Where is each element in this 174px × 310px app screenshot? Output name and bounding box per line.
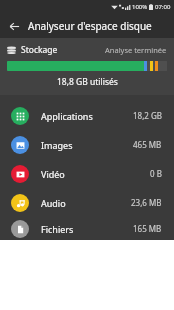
- staticText: 0 B: [150, 168, 162, 179]
- staticText: Fichiers: [41, 223, 74, 235]
- staticText: Stockage: [21, 44, 58, 56]
- button[interactable]: Applications: [0, 101, 174, 130]
- staticText: 165 MB: [133, 223, 162, 234]
- staticText: Vidéo: [41, 168, 65, 180]
- button[interactable]: Audio: [0, 188, 174, 217]
- staticText: Analyse terminée: [105, 45, 167, 55]
- staticText: 23,6 MB: [131, 197, 162, 208]
- staticText: 18,2 GB: [133, 110, 162, 121]
- button[interactable]: Back: [5, 17, 23, 35]
- staticText: Audio: [41, 197, 66, 209]
- staticText: 465 MB: [133, 139, 162, 150]
- button[interactable]: Vidéo: [0, 159, 174, 188]
- staticText: Images: [41, 139, 73, 151]
- button[interactable]: Fichiers: [0, 217, 174, 240]
- staticText: Applications: [41, 110, 93, 122]
- button[interactable]: Images: [0, 130, 174, 159]
- staticText: 18,8 GB utilisés: [57, 76, 118, 88]
- staticText: Analyseur d'espace disque: [28, 19, 152, 33]
- staticText: 100%: [132, 3, 148, 11]
- staticText: 07:00: [155, 3, 171, 11]
